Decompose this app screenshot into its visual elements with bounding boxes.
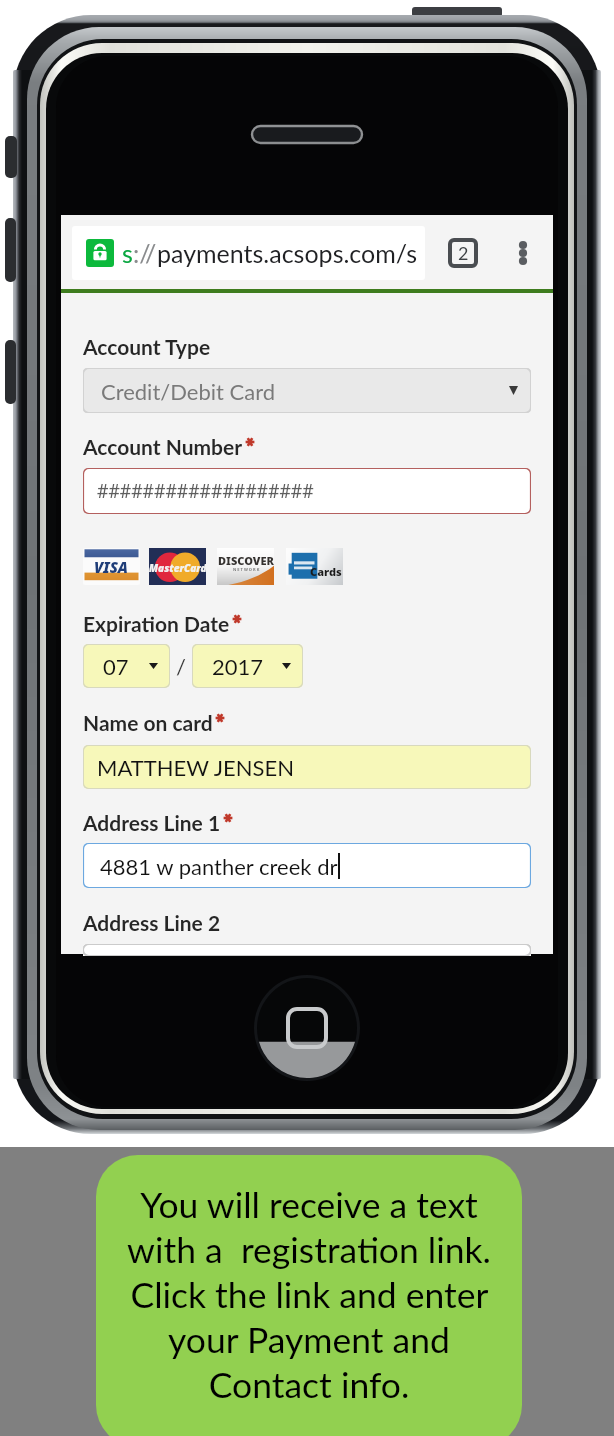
button[interactable]: Credit/Debit Card <box>83 368 531 413</box>
button[interactable]: 2017 <box>192 644 303 688</box>
staticText: Address Line 1 <box>83 810 221 835</box>
staticText: MasterCard <box>149 561 206 575</box>
staticText: Account Number <box>83 434 243 459</box>
staticText: ################### <box>97 478 314 504</box>
button[interactable]: ################### <box>83 468 531 514</box>
staticText: Credit/Debit Card <box>101 378 276 404</box>
staticText: VISA <box>94 557 129 577</box>
staticText: N E T W O R K <box>233 567 260 572</box>
staticText: Account Type <box>83 334 211 359</box>
staticText: 2017 <box>212 653 264 679</box>
staticText: Name on card <box>83 710 213 735</box>
staticText: Expiration Date <box>83 611 230 636</box>
button[interactable]: Tabs <box>450 240 476 266</box>
button[interactable]: 4881 w panther creek dr <box>83 843 531 888</box>
staticText: payments.acsops.com/s <box>157 238 417 268</box>
staticText: Address Line 2 <box>83 910 221 935</box>
button[interactable]: More options <box>510 239 536 265</box>
staticText: 2 <box>458 242 469 264</box>
staticText: Cards <box>310 564 342 579</box>
button[interactable]: MATTHEW JENSEN <box>83 745 531 789</box>
staticText: You will receive a text with a registrat… <box>110 1183 508 1406</box>
staticText: MATTHEW JENSEN <box>97 754 294 780</box>
button[interactable]: s <box>72 226 425 280</box>
staticText: / <box>176 653 186 679</box>
staticText: DISCOVER <box>218 553 274 568</box>
staticText: :// <box>133 238 157 268</box>
staticText: s <box>122 238 133 268</box>
button[interactable]: 07 <box>83 644 170 688</box>
staticText: 4881 w panther creek dr <box>100 853 338 879</box>
staticText: 07 <box>103 653 129 679</box>
